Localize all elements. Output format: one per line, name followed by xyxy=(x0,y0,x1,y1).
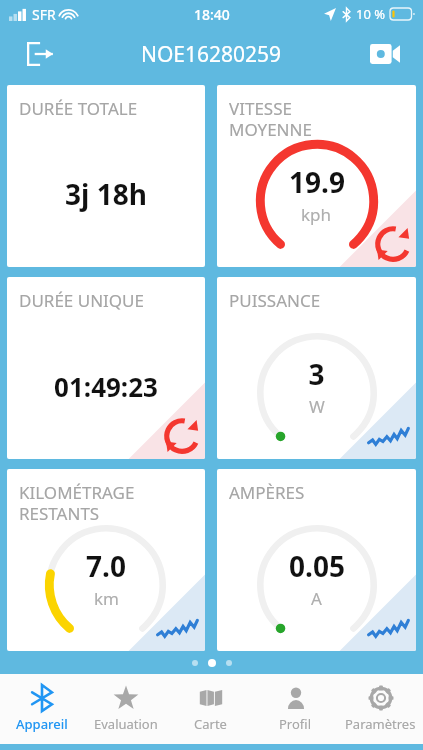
button[interactable]: KILOMÉTRAGE RESTANTS xyxy=(7,469,205,651)
staticText: kph xyxy=(301,203,332,226)
staticText: km xyxy=(94,587,119,610)
button[interactable]: Record video xyxy=(363,32,407,76)
button[interactable]: AMPÈRES xyxy=(217,469,416,651)
staticText: PUISSANCE xyxy=(229,289,321,312)
staticText: 3j 18h xyxy=(65,175,147,213)
staticText: W xyxy=(309,395,325,418)
staticText: NOE16280259 xyxy=(141,40,282,69)
staticText: Profil xyxy=(279,715,312,733)
staticText: DURÉE TOTALE xyxy=(19,97,138,120)
button[interactable]: Evaluation xyxy=(84,674,168,744)
button[interactable]: Profil xyxy=(253,674,338,744)
staticText: 10 % xyxy=(356,5,386,23)
button[interactable]: Appareil xyxy=(0,674,84,744)
button[interactable]: Paramètres xyxy=(338,674,423,744)
staticText: KILOMÉTRAGE RESTANTS xyxy=(19,481,135,525)
staticText: Appareil xyxy=(16,715,68,733)
staticText: 0.05 xyxy=(289,547,345,585)
staticText: Evaluation xyxy=(94,715,158,733)
staticText: 3 xyxy=(308,355,325,393)
button[interactable]: Carte xyxy=(168,674,253,744)
button[interactable]: VITESSE MOYENNE xyxy=(217,85,416,267)
staticText: VITESSE MOYENNE xyxy=(229,97,312,141)
button[interactable]: PUISSANCE xyxy=(217,277,416,459)
button[interactable]: DURÉE TOTALE xyxy=(7,85,205,267)
staticText: 01:49:23 xyxy=(54,369,158,404)
button[interactable]: DURÉE UNIQUE xyxy=(7,277,205,459)
staticText: AMPÈRES xyxy=(229,481,305,504)
staticText: Paramètres xyxy=(345,715,416,733)
button[interactable]: Logout xyxy=(18,32,62,76)
staticText: SFR xyxy=(32,5,56,24)
staticText: 7.0 xyxy=(86,547,126,585)
staticText: 18:40 xyxy=(194,5,230,24)
staticText: DURÉE UNIQUE xyxy=(19,289,145,312)
staticText: Carte xyxy=(194,715,227,733)
staticText: A xyxy=(311,587,322,610)
staticText: 19.9 xyxy=(289,163,345,201)
